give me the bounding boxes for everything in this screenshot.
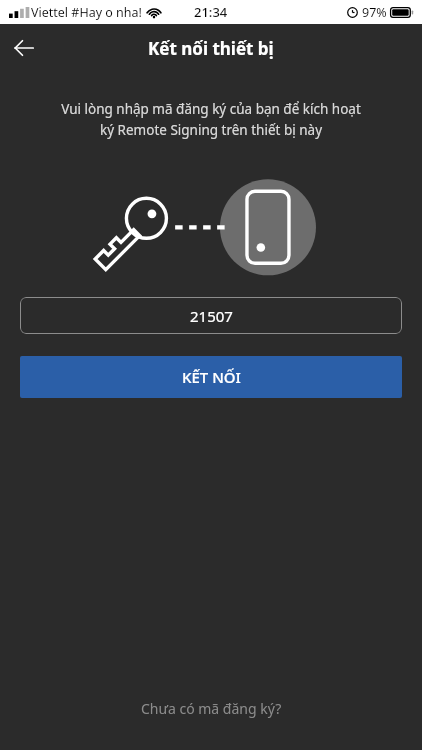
staticText: Viettel #Hay o nha! [31,4,142,21]
staticText: 21:34 [194,3,228,21]
staticText: Kết nối thiết bị [148,37,274,60]
button[interactable]: Back [0,24,48,72]
button[interactable]: KẾT NỐI [20,356,402,398]
button[interactable]: 21507 [20,297,402,334]
staticText: Vui lòng nhập mã đăng ký của bạn để kích… [20,100,402,139]
staticText: Chưa có mã đăng ký? [141,699,282,718]
staticText: 21507 [190,306,233,326]
staticText: KẾT NỐI [182,367,241,387]
staticText: 97% [362,4,387,21]
button[interactable]: Chưa có mã đăng ký? [0,687,422,730]
